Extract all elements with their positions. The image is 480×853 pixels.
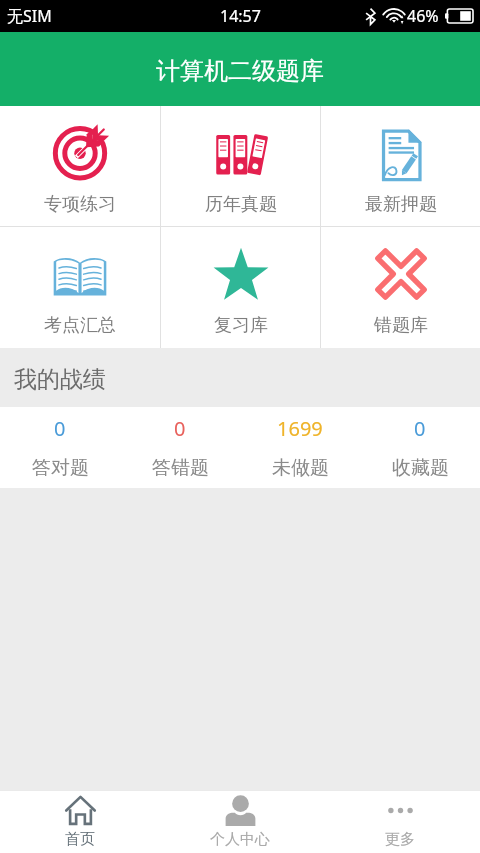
staticText: 0 bbox=[54, 415, 66, 442]
staticText: 0 bbox=[414, 415, 426, 442]
staticText: 复习库 bbox=[214, 314, 268, 337]
staticText: 计算机二级题库 bbox=[156, 56, 324, 86]
button[interactable]: 0 bbox=[0, 407, 120, 488]
staticText: 历年真题 bbox=[205, 193, 277, 216]
staticText: 更多 bbox=[385, 830, 415, 849]
button[interactable]: Home bbox=[0, 791, 160, 853]
button[interactable]: 0 bbox=[360, 407, 480, 488]
staticText: 专项练习 bbox=[44, 193, 116, 216]
button[interactable]: 1699 bbox=[240, 407, 360, 488]
staticText: 首页 bbox=[65, 830, 95, 849]
button[interactable]: More bbox=[320, 791, 480, 853]
staticText: 个人中心 bbox=[210, 830, 270, 849]
staticText: 收藏题 bbox=[392, 456, 449, 480]
staticText: 答错题 bbox=[152, 456, 209, 480]
other: Profile bbox=[225, 795, 256, 826]
staticText: 1699 bbox=[277, 415, 323, 442]
staticText: 14:57 bbox=[220, 5, 261, 27]
button[interactable]: Profile bbox=[160, 791, 320, 853]
button[interactable]: 专项练习 bbox=[0, 106, 160, 226]
staticText: 答对题 bbox=[32, 456, 89, 480]
staticText: 未做题 bbox=[272, 456, 329, 480]
button[interactable]: 复习库 bbox=[161, 227, 320, 348]
other: More bbox=[385, 795, 416, 826]
staticText: 最新押题 bbox=[365, 193, 437, 216]
button[interactable]: 错题库 bbox=[321, 227, 480, 348]
staticText: 我的战绩 bbox=[14, 365, 106, 394]
staticText: 46% bbox=[407, 5, 439, 27]
staticText: 错题库 bbox=[374, 314, 428, 337]
other: Home bbox=[65, 795, 96, 826]
button[interactable]: 0 bbox=[120, 407, 240, 488]
staticText: 考点汇总 bbox=[44, 314, 116, 337]
staticText: 0 bbox=[174, 415, 186, 442]
button[interactable]: 考点汇总 bbox=[0, 227, 160, 348]
button[interactable]: 历年真题 bbox=[161, 106, 320, 226]
staticText: 无SIM bbox=[7, 5, 52, 27]
button[interactable]: 最新押题 bbox=[321, 106, 480, 226]
